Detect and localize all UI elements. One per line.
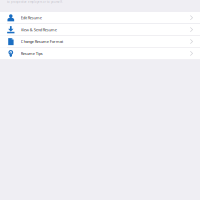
button[interactable]: Edit Resume bbox=[0, 12, 200, 23]
staticText: Resume Tips bbox=[21, 51, 43, 56]
staticText: to prospective employers or to yourself. bbox=[7, 0, 63, 4]
button[interactable]: Change Resume Format bbox=[0, 36, 200, 47]
staticText: View & Send Resume bbox=[21, 27, 57, 32]
button[interactable]: Resume Tips bbox=[0, 48, 200, 59]
staticText: Edit Resume bbox=[21, 15, 42, 20]
button[interactable]: View & Send Resume bbox=[0, 24, 200, 35]
staticText: Change Resume Format bbox=[21, 39, 63, 44]
